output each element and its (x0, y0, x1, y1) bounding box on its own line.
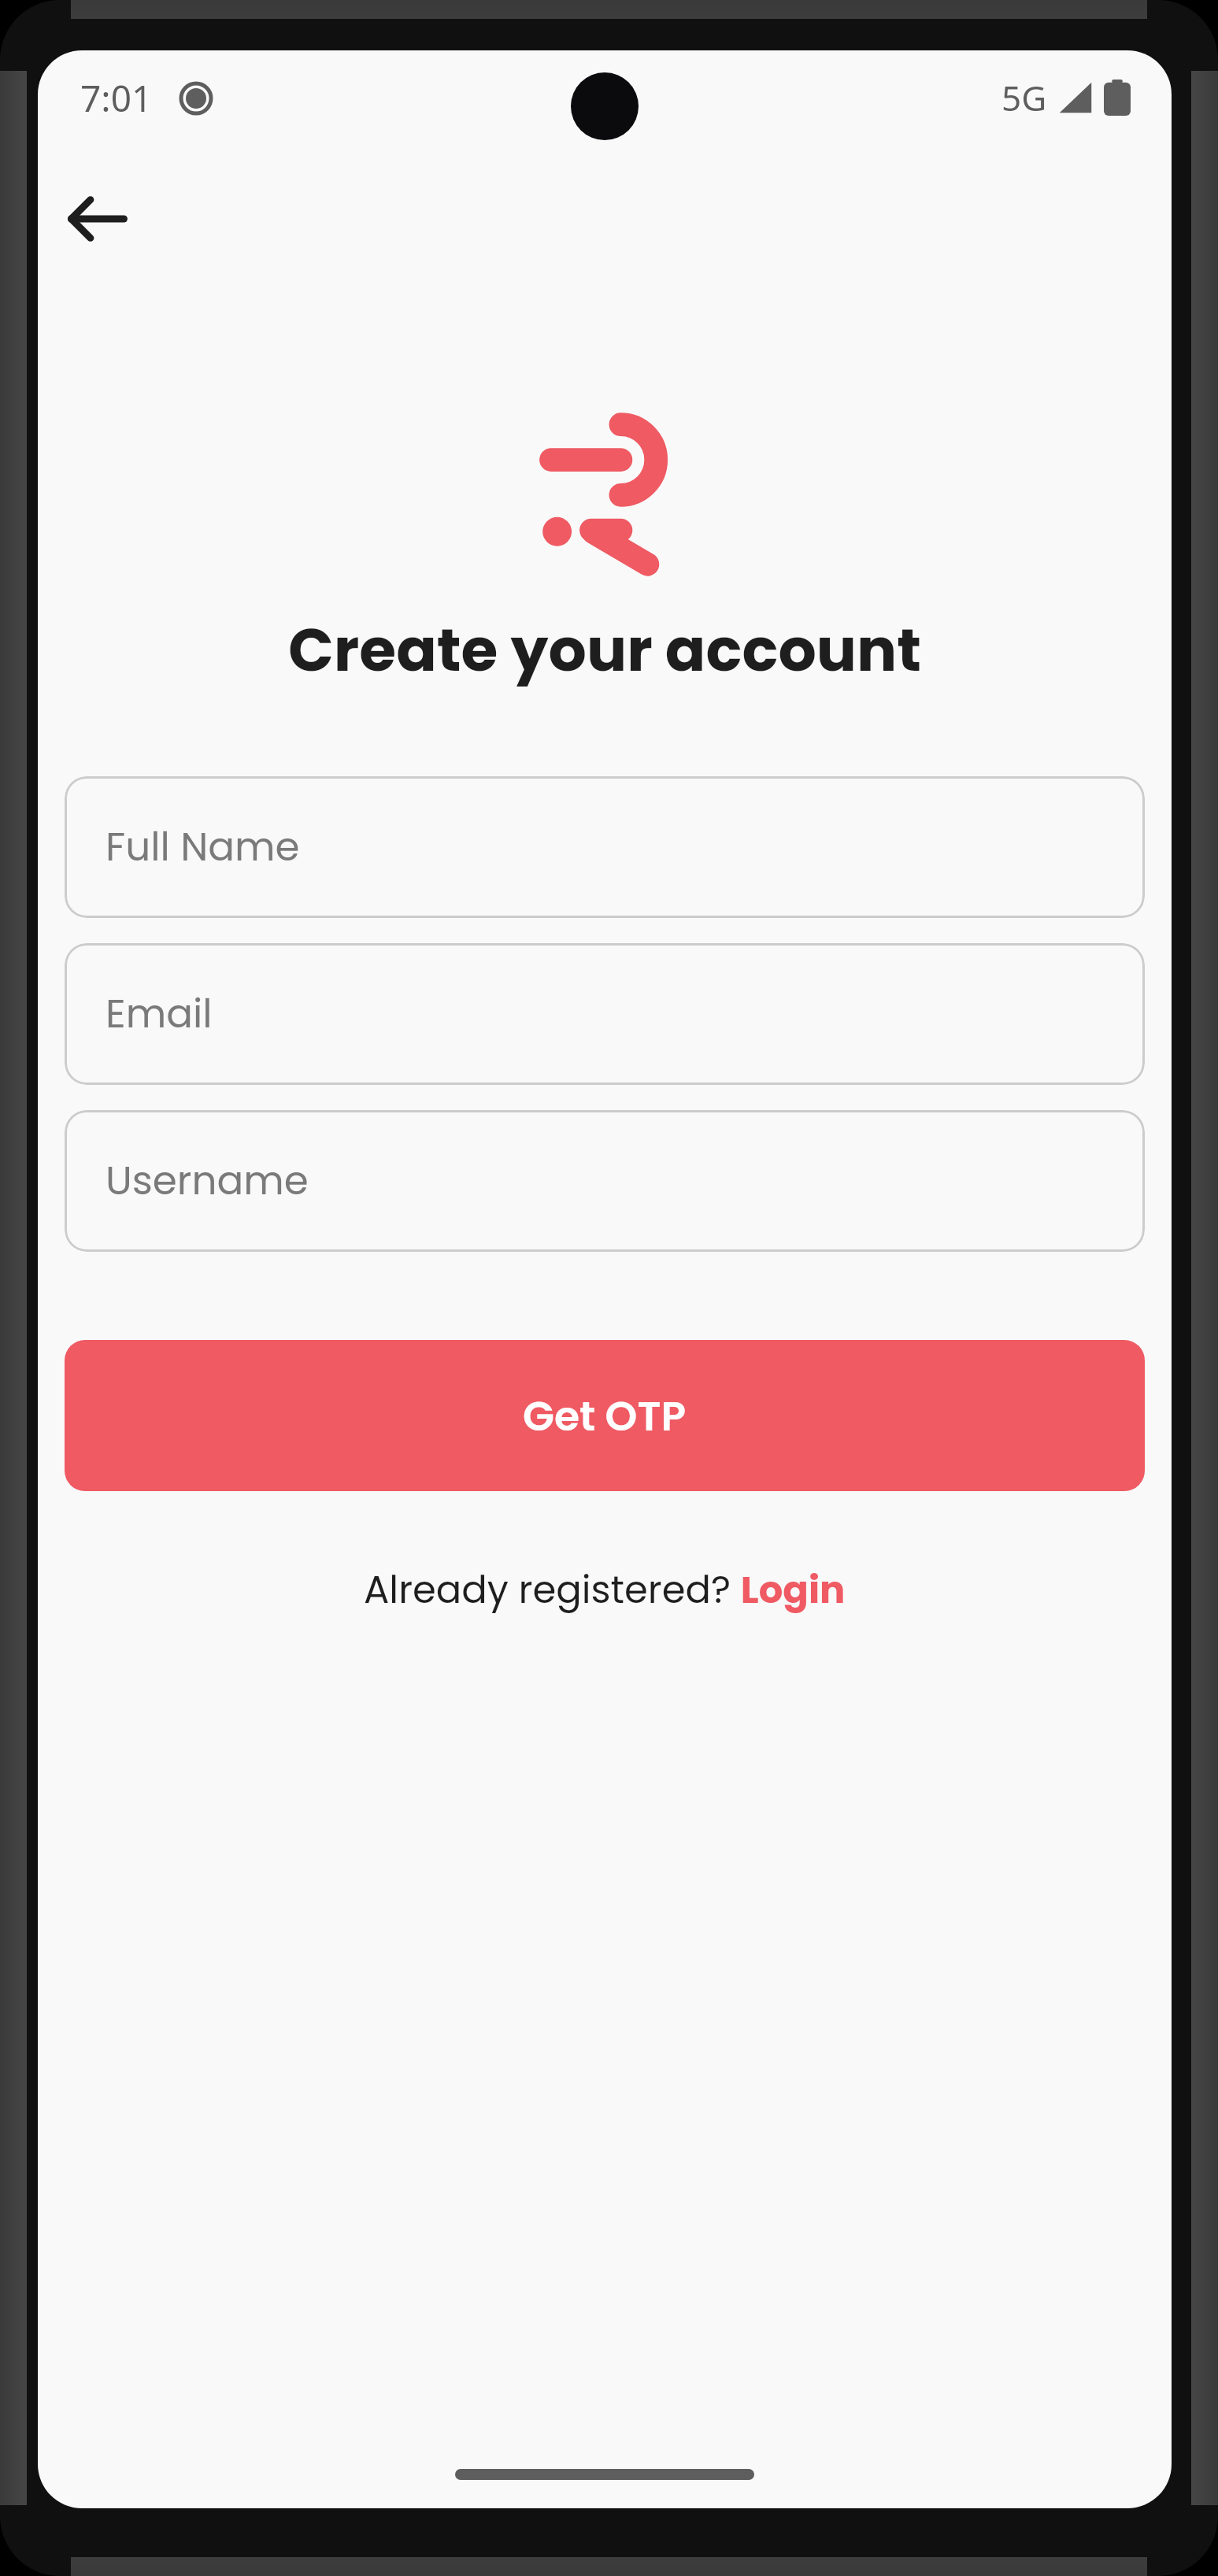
button[interactable]: Username (65, 1110, 1145, 1252)
staticText: Email (106, 986, 213, 1042)
staticText: Username (106, 1153, 309, 1208)
staticText: 7:01 (80, 73, 153, 123)
staticText: 5G (1001, 74, 1047, 121)
button[interactable]: Get OTP (65, 1340, 1145, 1491)
button[interactable]: Already registered? Login (364, 1564, 846, 1616)
button[interactable]: Email (65, 943, 1145, 1085)
button[interactable]: Full Name (65, 776, 1145, 918)
staticText: Already registered? Login (364, 1564, 846, 1616)
staticText: Full Name (106, 820, 300, 875)
button[interactable]: Back (57, 178, 139, 260)
staticText: Create your account (38, 608, 1172, 691)
staticText: Get OTP (523, 1387, 687, 1445)
